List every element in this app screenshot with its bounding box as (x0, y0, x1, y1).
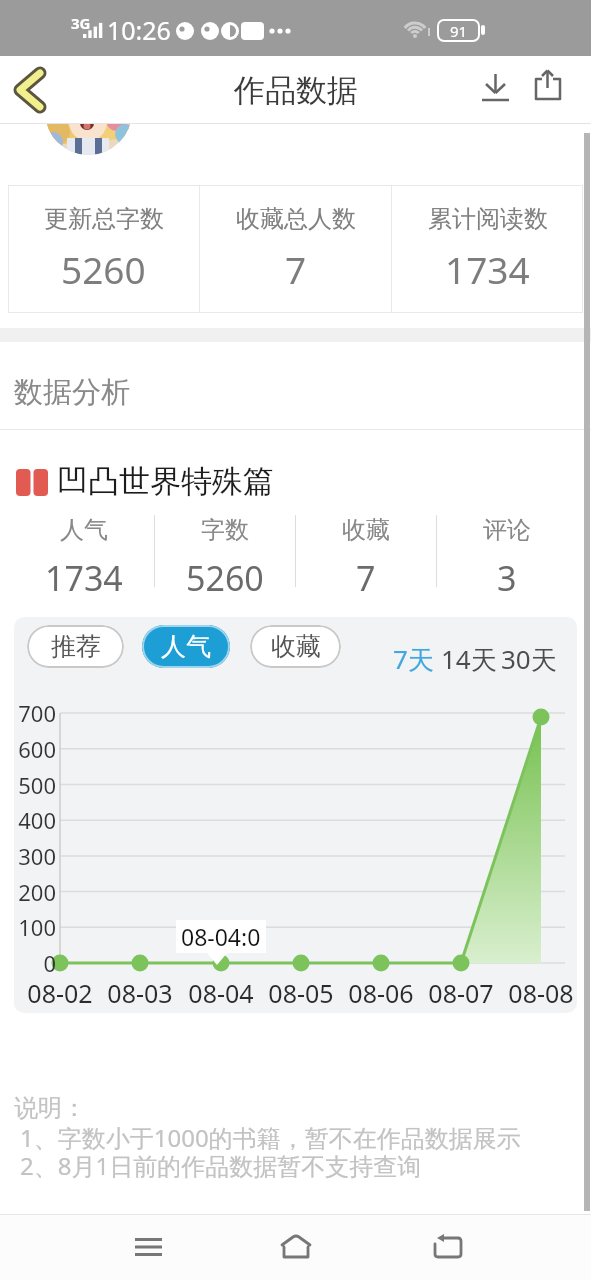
staticText: 100 (14, 912, 56, 942)
staticText: 10:26 (107, 13, 171, 47)
staticText: 500 (14, 770, 56, 800)
button[interactable] (522, 56, 572, 124)
staticText: 08-07 (425, 976, 497, 1010)
staticText: 说明： (14, 1093, 86, 1123)
staticText: 收藏 (342, 515, 390, 545)
staticText: 5260 (186, 555, 264, 595)
staticText: 08-08 (505, 976, 577, 1010)
staticText: 人气 (60, 515, 108, 545)
staticText: 700 (14, 698, 56, 728)
button[interactable]: 14天 (441, 641, 497, 677)
button[interactable] (470, 56, 520, 124)
staticText: 数据分析 (14, 374, 130, 411)
staticText: 400 (14, 805, 56, 835)
button[interactable] (418, 1214, 478, 1280)
staticText: 0 (14, 948, 56, 978)
staticText: 7 (285, 244, 307, 294)
staticText: 推荐 (51, 631, 101, 662)
staticText: 1734 (45, 555, 123, 595)
staticText: 2、8月1日前的作品数据暂不支持查询 (20, 1149, 422, 1182)
button[interactable]: 推荐 (27, 625, 124, 668)
staticText: 08-04 (185, 976, 257, 1010)
staticText: 更新总字数 (44, 204, 164, 234)
staticText: 200 (14, 877, 56, 907)
button[interactable]: 人气 (142, 625, 230, 668)
staticText: 08-06 (345, 976, 417, 1010)
staticText: 300 (14, 841, 56, 871)
staticText: 08-04:0 (181, 921, 261, 952)
staticText: 凹凸世界特殊篇 (57, 462, 274, 501)
button[interactable]: 30天 (501, 641, 557, 677)
staticText: 3G (71, 13, 91, 33)
staticText: 作品数据 (234, 71, 358, 110)
staticText: 评论 (483, 515, 531, 545)
staticText: 1734 (445, 244, 530, 294)
button[interactable] (118, 1214, 178, 1280)
staticText: 人气 (161, 631, 211, 662)
button[interactable]: 7天 (393, 641, 434, 677)
staticText: 08-02 (24, 976, 96, 1010)
staticText: 3 (497, 555, 517, 595)
staticText: 收藏总人数 (236, 204, 356, 234)
staticText: 600 (14, 734, 56, 764)
staticText: 1、字数小于1000的书籍，暂不在作品数据展示 (20, 1121, 521, 1154)
staticText: 7 (356, 555, 376, 595)
button[interactable] (266, 1214, 326, 1280)
staticText: 08-03 (104, 976, 176, 1010)
staticText: 收藏 (271, 631, 321, 662)
button[interactable]: 收藏 (250, 625, 341, 668)
staticText: 累计阅读数 (428, 204, 548, 234)
staticText: 5260 (61, 244, 146, 294)
button[interactable] (0, 56, 60, 124)
staticText: 08-05 (265, 976, 337, 1010)
staticText: 91 (450, 21, 468, 41)
staticText: 字数 (201, 515, 249, 545)
